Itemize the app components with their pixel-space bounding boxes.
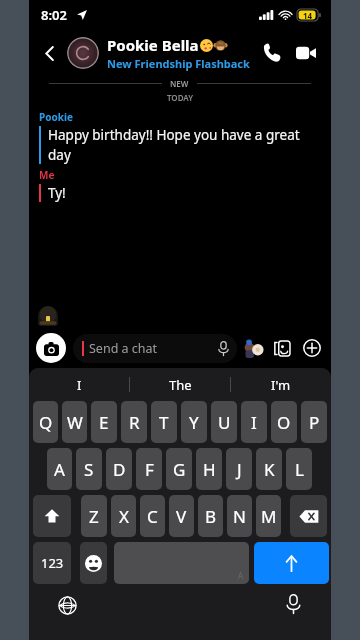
staticText: Z: [89, 505, 99, 528]
staticText: G: [173, 458, 186, 481]
staticText: V: [176, 505, 187, 528]
button[interactable]: Send a snap: [270, 336, 294, 360]
staticText: X: [119, 505, 129, 528]
staticText: K: [264, 458, 275, 481]
staticText: T: [159, 411, 169, 434]
button[interactable]: S: [76, 448, 102, 490]
staticText: J: [237, 458, 242, 481]
staticText: U: [218, 411, 231, 434]
staticText: Pookie Bella: [107, 35, 199, 55]
button[interactable]: Back: [37, 40, 63, 66]
button[interactable]: Pookie Bella: [107, 35, 255, 71]
staticText: F: [145, 458, 154, 481]
button[interactable]: I: [241, 401, 267, 443]
staticText: P: [309, 411, 320, 434]
staticText: I: [251, 411, 257, 434]
button[interactable]: A: [47, 448, 72, 490]
button[interactable]: Numbers: [33, 542, 71, 584]
staticText: NEW: [170, 78, 189, 89]
button[interactable]: W: [62, 401, 87, 443]
button[interactable]: Emoji: [80, 542, 107, 584]
staticText: O: [277, 411, 291, 434]
staticText: 8:02: [41, 6, 67, 24]
staticText: A: [54, 458, 65, 481]
button[interactable]: M: [256, 495, 281, 537]
staticText: H: [203, 458, 216, 481]
staticText: Pookie: [39, 110, 73, 124]
staticText: Me: [39, 168, 55, 182]
button[interactable]: The: [130, 368, 230, 401]
button[interactable]: J: [226, 448, 252, 490]
button[interactable]: Dictation: [280, 591, 306, 617]
button[interactable]: More options: [300, 336, 324, 360]
staticText: B: [205, 505, 217, 528]
button[interactable]: Backspace: [290, 495, 327, 537]
button[interactable]: E: [91, 401, 117, 443]
button[interactable]: D: [106, 448, 132, 490]
staticText: W: [67, 411, 83, 434]
button[interactable]: U: [211, 401, 237, 443]
button[interactable]: X: [111, 495, 136, 537]
button[interactable]: Z: [81, 495, 107, 537]
button[interactable]: T: [151, 401, 177, 443]
staticText: 14: [303, 10, 313, 21]
staticText: 123: [41, 554, 64, 572]
staticText: L: [295, 458, 304, 481]
button[interactable]: R: [121, 401, 147, 443]
staticText: Ty!: [48, 184, 66, 202]
button[interactable]: O: [271, 401, 297, 443]
button[interactable]: Profile: [67, 37, 99, 69]
button[interactable]: P: [301, 401, 327, 443]
staticText: E: [99, 411, 109, 434]
button[interactable]: Send a chat: [73, 334, 237, 363]
button[interactable]: Send: [254, 542, 329, 584]
button[interactable]: I'm: [231, 368, 331, 401]
staticText: TODAY: [29, 92, 331, 103]
button[interactable]: C: [140, 495, 165, 537]
staticText: The: [169, 376, 192, 394]
staticText: M: [261, 505, 277, 528]
button[interactable]: Change keyboard: [54, 592, 80, 618]
button[interactable]: Bitmoji: [38, 306, 58, 326]
button[interactable]: Video call: [289, 36, 323, 70]
staticText: D: [113, 458, 126, 481]
staticText: Q: [39, 411, 53, 434]
button[interactable]: Stickers: [242, 337, 264, 359]
staticText: C: [147, 505, 158, 528]
staticText: Y: [189, 411, 199, 434]
staticText: New Friendship Flashback: [107, 56, 250, 71]
staticText: I'm: [271, 376, 291, 394]
button[interactable]: V: [169, 495, 194, 537]
button[interactable]: L: [286, 448, 312, 490]
button[interactable]: I: [29, 368, 129, 401]
staticText: I: [77, 376, 82, 394]
staticText: R: [129, 411, 140, 434]
staticText: S: [84, 458, 94, 481]
button[interactable]: K: [256, 448, 282, 490]
button[interactable]: Q: [33, 401, 58, 443]
button[interactable]: Y: [181, 401, 207, 443]
button[interactable]: Space: [114, 542, 249, 584]
button[interactable]: Voice call: [255, 36, 289, 70]
button[interactable]: F: [136, 448, 162, 490]
button[interactable]: Shift: [33, 495, 71, 537]
button[interactable]: G: [166, 448, 192, 490]
button[interactable]: H: [196, 448, 222, 490]
button[interactable]: Camera: [36, 333, 66, 363]
button[interactable]: B: [198, 495, 223, 537]
staticText: Happy birthday!! Hope you have a great d…: [48, 126, 317, 164]
staticText: A: [238, 570, 244, 581]
staticText: Send a chat: [89, 340, 218, 357]
staticText: N: [233, 505, 246, 528]
button[interactable]: N: [227, 495, 252, 537]
